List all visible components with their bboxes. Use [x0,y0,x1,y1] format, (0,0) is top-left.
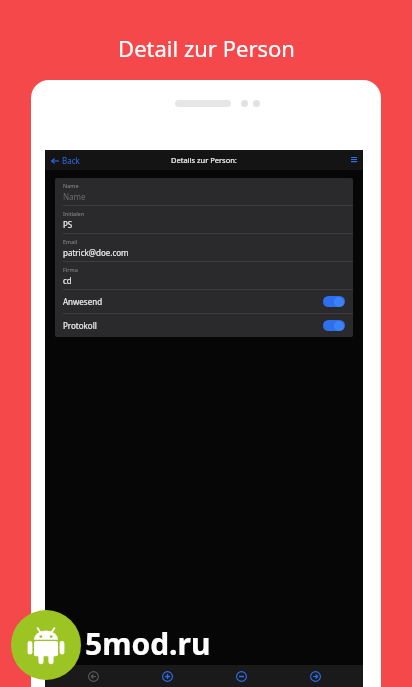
staticText: Back [62,155,80,166]
button[interactable]: Anwesend [55,290,353,313]
staticText: Email [63,238,78,245]
button[interactable]: Remove [230,665,252,687]
staticText: Initialen [63,210,85,217]
staticText: cd [63,275,72,286]
staticText: Details zur Person: [171,155,237,165]
button[interactable]: Back [45,152,86,169]
button[interactable]: Protokoll [55,314,353,337]
staticText: Firma [63,266,78,273]
button[interactable]: Forward [304,665,326,687]
button[interactable]: Back [82,665,104,687]
staticText: patrick@doe.com [63,247,129,258]
button[interactable]: Add [156,665,178,687]
staticText: Protokoll [63,320,97,331]
button[interactable]: Firma [55,262,353,289]
staticText: 5mod.ru [85,623,211,664]
button[interactable]: Email [55,234,353,261]
staticText: PS [63,219,73,230]
staticText: Name [63,191,86,202]
button[interactable]: Menu [345,152,363,168]
staticText: Anwesend [63,296,103,307]
button[interactable]: Initialen [55,206,353,233]
staticText: Name [63,182,79,189]
button[interactable]: Name [55,178,353,205]
staticText: Detail zur Person [118,33,295,63]
